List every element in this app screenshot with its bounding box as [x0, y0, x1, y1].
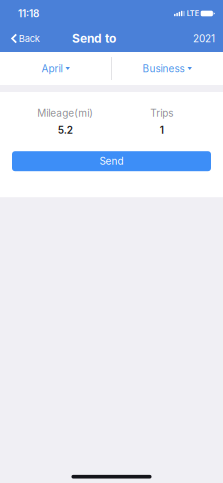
staticText: 11:18: [18, 7, 39, 20]
staticText: Trips: [150, 107, 173, 119]
button[interactable]: April: [0, 52, 111, 85]
button[interactable]: 2021: [185, 25, 223, 52]
staticText: 1: [160, 124, 164, 136]
staticText: April: [41, 62, 62, 75]
button[interactable]: Send: [12, 151, 211, 171]
staticText: Business: [143, 62, 185, 75]
staticText: LTE: [187, 9, 199, 18]
button[interactable]: Back: [0, 25, 46, 52]
staticText: Mileage(mi): [37, 107, 93, 119]
staticText: 5.2: [58, 124, 73, 136]
staticText: Send: [99, 155, 123, 167]
staticText: Send to: [72, 31, 116, 46]
staticText: Back: [19, 33, 40, 44]
button[interactable]: Business: [111, 52, 223, 85]
staticText: 2021: [193, 32, 215, 45]
